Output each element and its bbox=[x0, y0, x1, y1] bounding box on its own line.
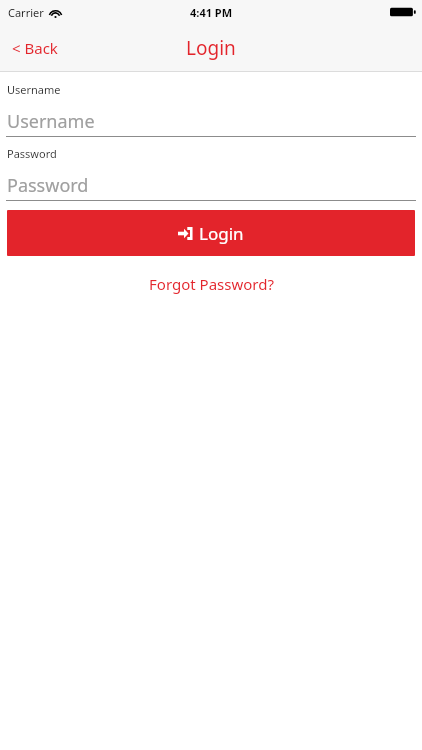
staticText: Login bbox=[186, 35, 236, 61]
staticText: Username bbox=[7, 109, 95, 134]
staticText: < Back bbox=[12, 38, 58, 58]
staticText: Login bbox=[199, 222, 244, 245]
button[interactable]: Login bbox=[7, 210, 415, 256]
staticText: Forgot Password? bbox=[149, 274, 274, 294]
staticText: Username bbox=[7, 82, 61, 97]
staticText: Password bbox=[7, 146, 57, 161]
staticText: Password bbox=[7, 173, 89, 198]
button[interactable]: Forgot Password? bbox=[137, 270, 286, 298]
staticText: Carrier bbox=[8, 5, 44, 20]
staticText: 4:41 PM bbox=[190, 5, 233, 20]
button[interactable]: Username bbox=[0, 106, 422, 136]
button[interactable]: Password bbox=[0, 170, 422, 200]
button[interactable]: < Back bbox=[0, 30, 70, 66]
